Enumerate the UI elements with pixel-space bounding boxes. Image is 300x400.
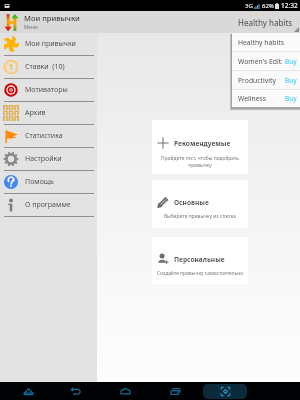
staticText: Мотиваторы — [25, 85, 68, 95]
button[interactable]: Back — [53, 382, 97, 400]
button[interactable]: Screenshot — [203, 382, 247, 400]
staticText: Рекомендуемые — [174, 139, 231, 148]
button[interactable]: Мои привычки — [0, 11, 84, 33]
staticText: О программе — [25, 200, 71, 210]
staticText: Персональные — [174, 255, 225, 264]
staticText: Healthy habits — [238, 17, 293, 28]
button[interactable]: Healthy habits — [232, 33, 300, 52]
staticText: 62% — [262, 2, 274, 10]
staticText: Buy — [285, 57, 297, 66]
button[interactable]: Статистика — [0, 125, 97, 148]
staticText: Мои привычки — [24, 13, 80, 23]
button[interactable]: Помощь — [0, 171, 97, 194]
staticText: Пройдите тест, чтобы подобрать привычку — [154, 155, 246, 169]
button[interactable]: Wellness — [232, 90, 300, 107]
button[interactable]: Women's Edition — [232, 52, 300, 71]
button[interactable]: Настройки — [0, 148, 97, 171]
button[interactable]: Архив — [0, 102, 97, 125]
staticText: Productivity — [238, 76, 276, 85]
button[interactable]: Мотиваторы — [0, 79, 97, 102]
button[interactable]: Рекомендуемые — [152, 120, 248, 174]
button[interactable]: Ставки (10) — [0, 56, 97, 79]
button[interactable]: Основные — [152, 180, 248, 228]
staticText: Мои привычки — [25, 39, 76, 49]
staticText: Healthy habits — [238, 38, 284, 47]
staticText: 3G — [245, 2, 253, 10]
staticText: Wellness — [238, 94, 267, 103]
staticText: Buy — [285, 94, 297, 103]
staticText: Основные — [174, 198, 209, 207]
staticText: 12:32 — [281, 1, 298, 10]
staticText: Buy — [285, 76, 297, 85]
staticText: Статистика — [25, 131, 63, 141]
staticText: Архив — [25, 108, 46, 118]
button[interactable]: Персональные — [152, 237, 248, 284]
button[interactable]: Home — [103, 382, 147, 400]
staticText: Выберите привычку из списка — [154, 213, 246, 220]
button[interactable]: Recents — [153, 382, 197, 400]
button[interactable]: О программе — [0, 194, 97, 217]
button[interactable]: Мои привычки — [0, 33, 97, 56]
button[interactable]: Up — [6, 382, 50, 400]
staticText: Ставки (10) — [25, 62, 65, 72]
staticText: Создайте привычку самостоятельно — [154, 270, 246, 277]
staticText: Меню — [24, 24, 38, 31]
staticText: Настройки — [25, 154, 62, 164]
button[interactable]: Productivity — [232, 71, 300, 90]
staticText: Помощь — [25, 177, 54, 187]
button[interactable]: Healthy habits — [238, 11, 300, 33]
staticText: Women's Edition — [238, 57, 282, 66]
